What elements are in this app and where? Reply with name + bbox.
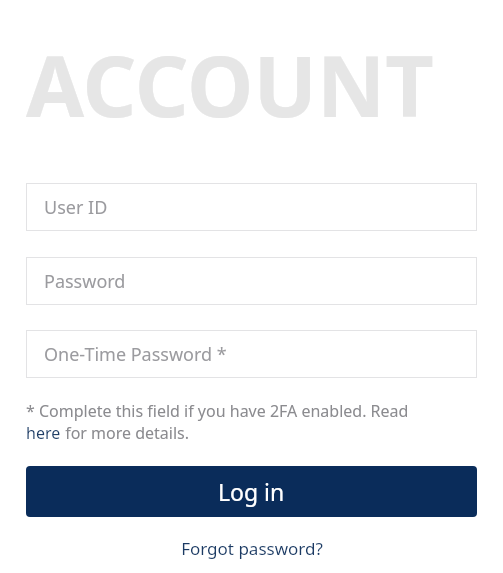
staticText: here [26, 422, 61, 444]
button[interactable]: One-Time Password * [26, 330, 477, 378]
staticText: One-Time Password * [44, 342, 227, 367]
button[interactable]: Log in [26, 466, 477, 517]
button[interactable]: User ID [26, 183, 477, 231]
staticText: ACCOUNT [26, 27, 434, 141]
staticText: Log in [218, 476, 285, 507]
staticText: Forgot password? [181, 537, 323, 560]
staticText: for more details. [61, 422, 190, 444]
button[interactable]: Forgot password? [177, 535, 327, 562]
staticText: User ID [44, 195, 108, 220]
staticText: Password [44, 269, 126, 294]
button[interactable]: here [26, 422, 61, 444]
staticText: * Complete this field if you have 2FA en… [26, 400, 409, 422]
button[interactable]: Password [26, 257, 477, 305]
